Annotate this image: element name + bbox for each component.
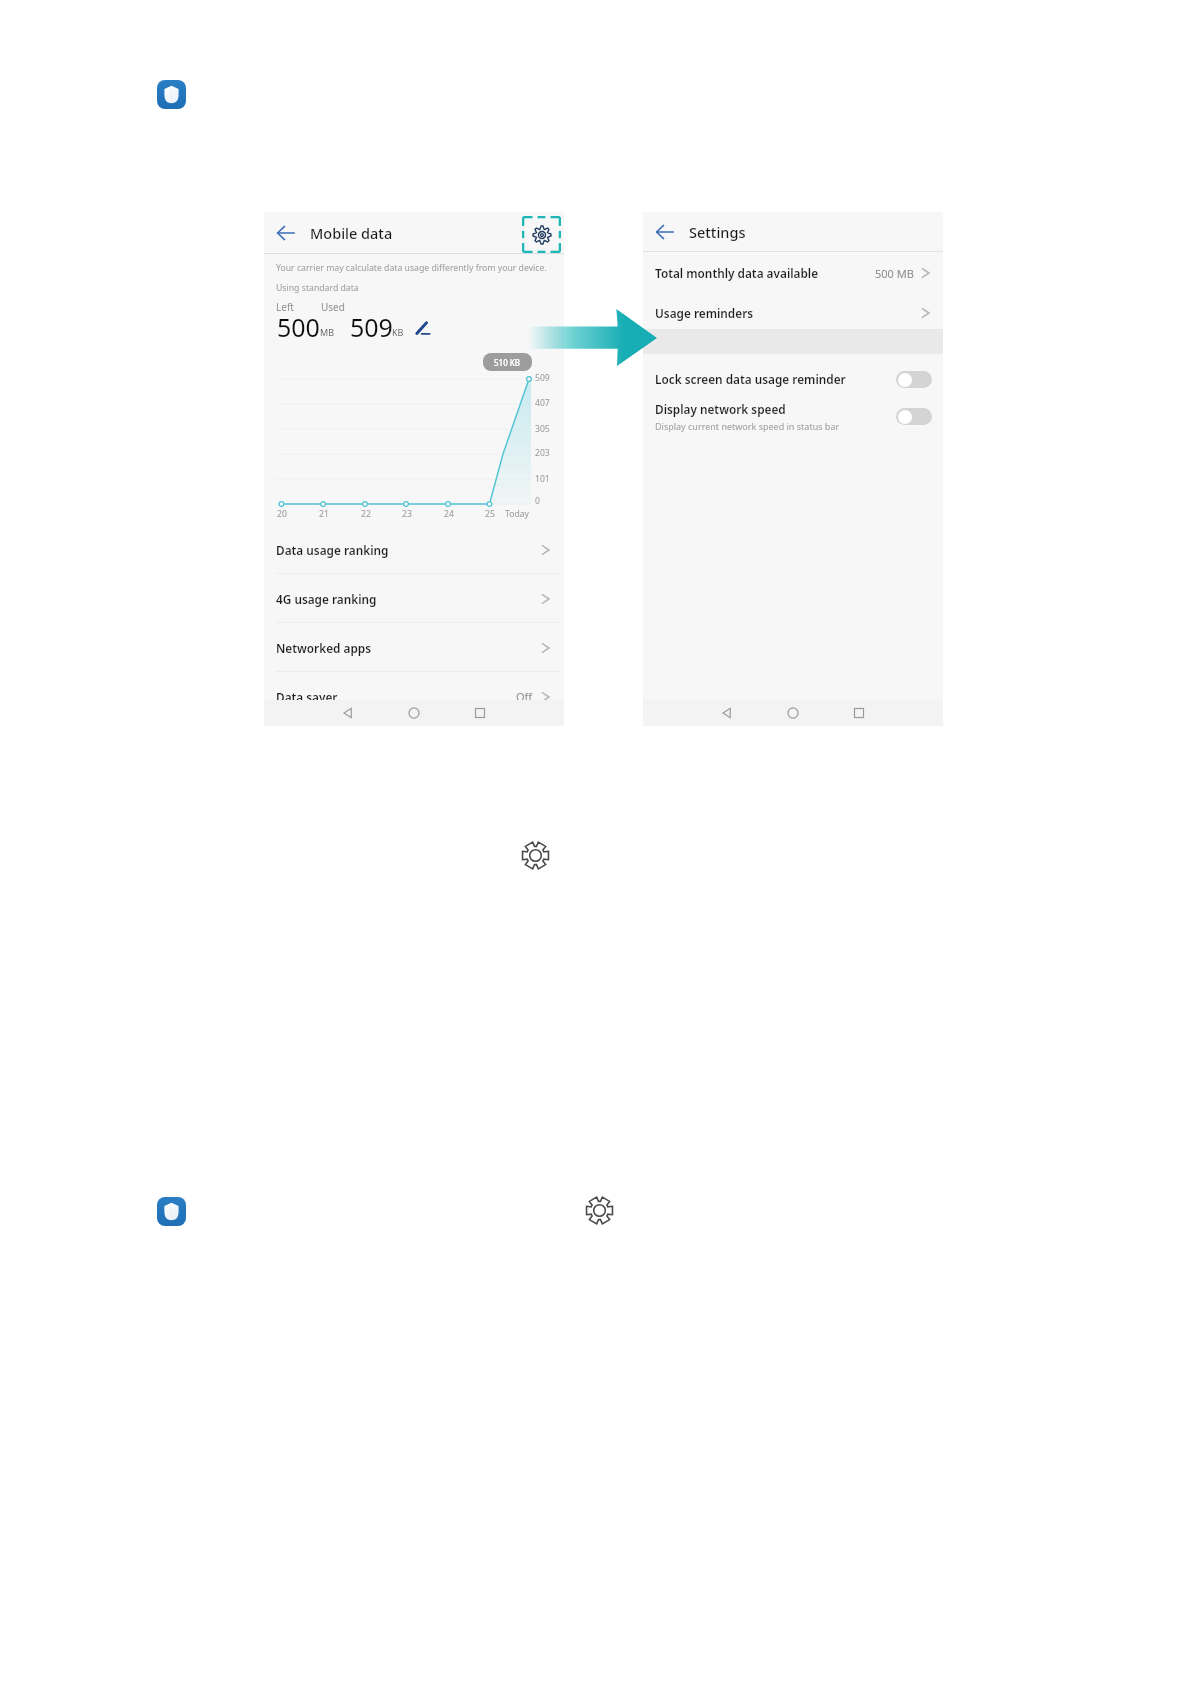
staticText: 0: [535, 495, 540, 507]
button[interactable]: Data usage ranking: [264, 525, 564, 574]
staticText: 500: [277, 310, 320, 344]
button[interactable]: Settings: [522, 216, 561, 253]
staticText: 500 MB: [875, 266, 914, 281]
button[interactable]: Back: [718, 704, 736, 722]
button[interactable]: Usage reminders: [643, 293, 943, 333]
staticText: Networked apps: [276, 640, 372, 656]
staticText: 21: [319, 508, 329, 520]
staticText: Display current network speed in status …: [655, 420, 840, 432]
staticText: Mobile data: [310, 223, 393, 243]
staticText: Usage reminders: [655, 305, 754, 321]
button[interactable]: Back: [276, 223, 296, 243]
staticText: KB: [392, 326, 404, 338]
staticText: 24: [444, 508, 454, 520]
staticText: Data saver: [276, 689, 338, 705]
button[interactable]: Home: [784, 704, 802, 722]
staticText: Off: [516, 689, 533, 704]
staticText: Left: [276, 300, 294, 314]
button[interactable]: Total monthly data available: [643, 253, 943, 293]
staticText: Today: [505, 508, 529, 520]
button[interactable]: Display network speed: [643, 397, 943, 435]
button[interactable]: 4G usage ranking: [264, 574, 564, 623]
staticText: 509: [350, 310, 393, 344]
button[interactable]: Display network speed, off: [896, 408, 932, 425]
staticText: 510 KB: [494, 357, 521, 368]
button[interactable]: Lock screen data usage reminder, off: [896, 371, 932, 388]
button[interactable]: Recents: [471, 704, 489, 722]
button[interactable]: Data saver: [264, 672, 564, 721]
button[interactable]: Recents: [850, 704, 868, 722]
staticText: 25: [485, 508, 495, 520]
staticText: Settings: [689, 222, 746, 242]
button[interactable]: Back: [655, 222, 675, 242]
staticText: 20: [277, 508, 287, 520]
button[interactable]: Networked apps: [264, 623, 564, 672]
button[interactable]: Edit: [412, 318, 434, 340]
button[interactable]: Back: [339, 704, 357, 722]
staticText: 407: [535, 397, 550, 409]
button[interactable]: Lock screen data usage reminder: [643, 360, 943, 398]
staticText: Used: [321, 300, 345, 314]
staticText: 203: [535, 447, 550, 459]
staticText: Data usage ranking: [276, 542, 389, 558]
button[interactable]: Home: [405, 704, 423, 722]
staticText: Lock screen data usage reminder: [655, 371, 846, 387]
staticText: MB: [320, 326, 335, 338]
staticText: 4G usage ranking: [276, 591, 377, 607]
staticText: 23: [402, 508, 412, 520]
staticText: 22: [361, 508, 371, 520]
staticText: Using standard data: [276, 282, 359, 294]
staticText: 101: [535, 473, 550, 485]
staticText: Total monthly data available: [655, 265, 819, 281]
staticText: 509: [535, 372, 550, 384]
staticText: 305: [535, 423, 550, 435]
staticText: Display network speed: [655, 401, 786, 417]
staticText: Your carrier may calculate data usage di…: [276, 262, 547, 274]
